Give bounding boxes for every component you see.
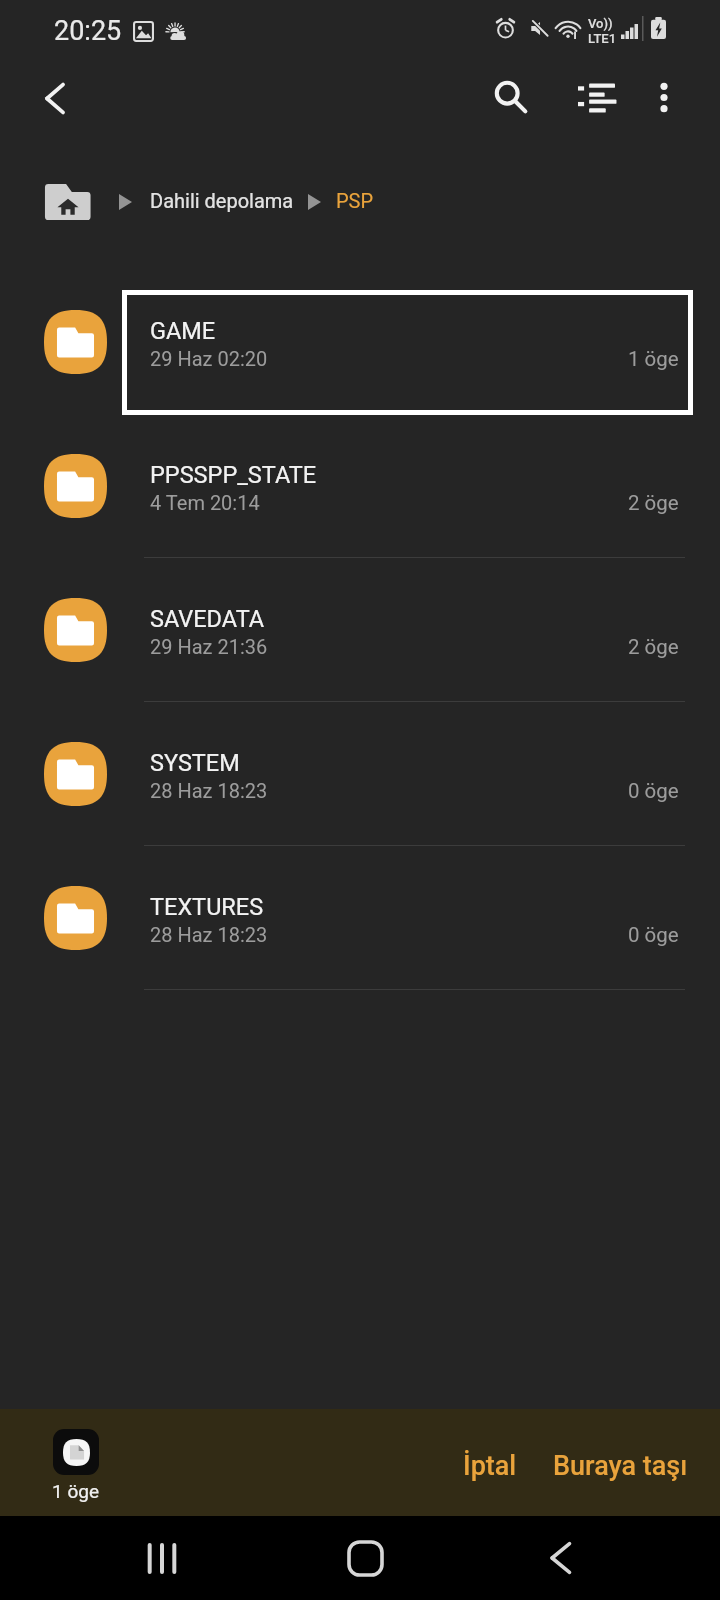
- staticText: 2 öge: [628, 491, 679, 515]
- staticText: 0 öge: [628, 779, 679, 803]
- staticText: SYSTEM: [150, 749, 240, 777]
- staticText: Buraya taşı: [553, 1450, 688, 1482]
- staticText: İptal: [463, 1450, 517, 1482]
- button[interactable]: Home: [330, 1523, 400, 1593]
- staticText: 4 Tem 20:14: [150, 491, 260, 514]
- staticText: PPSSPP_STATE: [150, 461, 317, 489]
- button[interactable]: Recents: [127, 1523, 197, 1593]
- staticText: GAME: [150, 317, 216, 345]
- button[interactable]: Back: [26, 70, 82, 126]
- button[interactable]: Selected item: [53, 1429, 99, 1475]
- staticText: LTE1: [588, 31, 617, 46]
- button[interactable]: İptal: [442, 1436, 538, 1496]
- button[interactable]: Buraya taşı: [532, 1436, 709, 1496]
- button[interactable]: Dahili depolama: [143, 181, 301, 220]
- button[interactable]: SYSTEM: [0, 702, 720, 846]
- button[interactable]: Search: [482, 68, 538, 124]
- button[interactable]: Internal storage root: [36, 174, 100, 230]
- button[interactable]: TEXTURES: [0, 846, 720, 990]
- staticText: 20:25: [54, 15, 122, 47]
- staticText: Vo)): [588, 16, 613, 31]
- staticText: 29 Haz 02:20: [150, 347, 268, 370]
- button[interactable]: PPSSPP_STATE: [0, 414, 720, 558]
- button[interactable]: Back: [525, 1523, 595, 1593]
- staticText: TEXTURES: [150, 893, 264, 921]
- button[interactable]: More options: [636, 69, 692, 125]
- staticText: PSP: [336, 189, 374, 212]
- staticText: 28 Haz 18:23: [150, 779, 268, 802]
- staticText: 0 öge: [628, 923, 679, 947]
- staticText: 1 öge: [52, 1480, 99, 1502]
- staticText: 2 öge: [628, 635, 679, 659]
- staticText: 28 Haz 18:23: [150, 923, 268, 946]
- staticText: Dahili depolama: [150, 189, 294, 212]
- staticText: SAVEDATA: [150, 605, 265, 633]
- button[interactable]: PSP: [329, 181, 381, 220]
- button[interactable]: Sort: [568, 68, 624, 124]
- staticText: 29 Haz 21:36: [150, 635, 268, 658]
- button[interactable]: GAME: [0, 270, 720, 414]
- button[interactable]: SAVEDATA: [0, 558, 720, 702]
- staticText: 1 öge: [628, 347, 679, 371]
